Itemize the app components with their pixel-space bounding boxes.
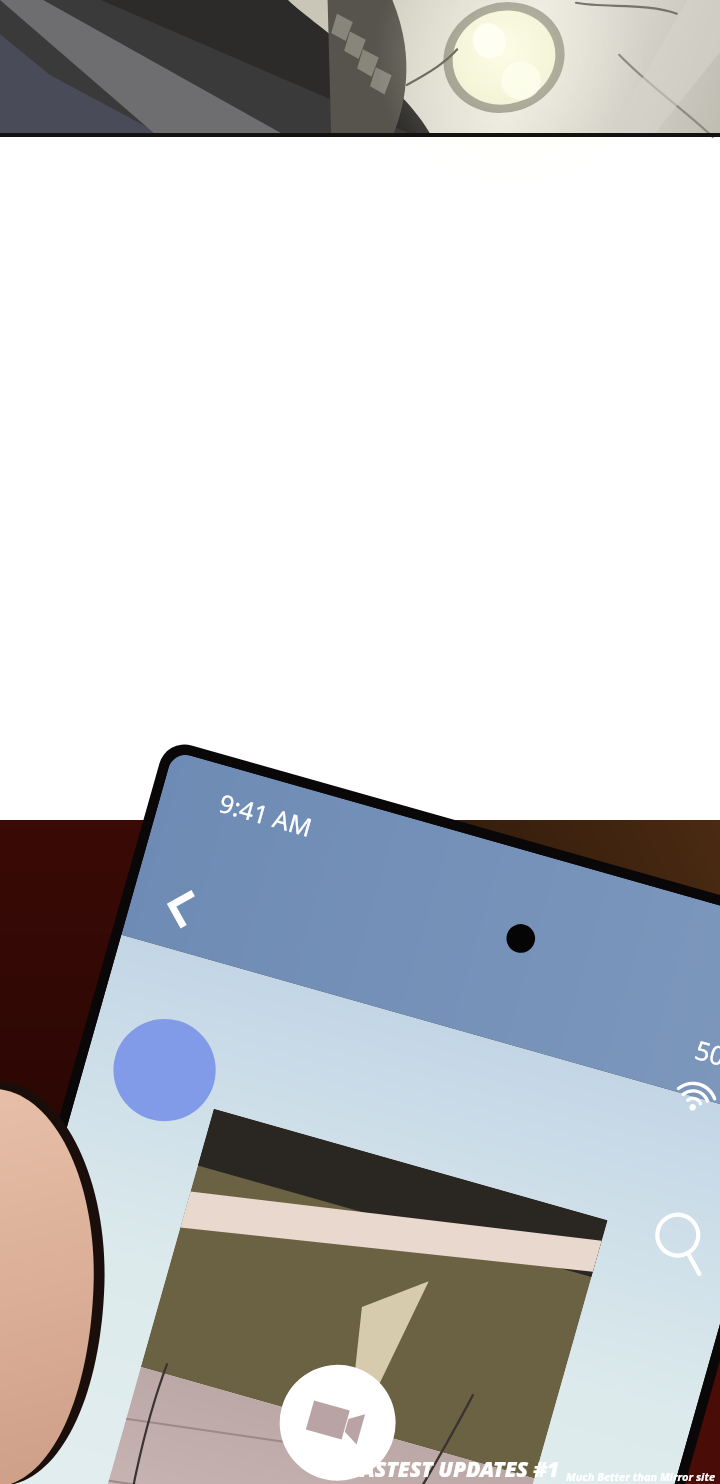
- button[interactable]: More options: [705, 1090, 720, 1139]
- button[interactable]: Play video message: [181, 1255, 342, 1415]
- staticText: 50%: [691, 1031, 720, 1079]
- button[interactable]: Profile picture: [67, 936, 203, 1072]
- staticText: 9:41 AM: [215, 785, 316, 844]
- button[interactable]: Search: [632, 1072, 720, 1165]
- staticText: Much Better than Mirror site: [566, 1469, 716, 1484]
- staticText: FASTEST UPDATES #1: [349, 1455, 560, 1484]
- button[interactable]: Back: [165, 818, 252, 904]
